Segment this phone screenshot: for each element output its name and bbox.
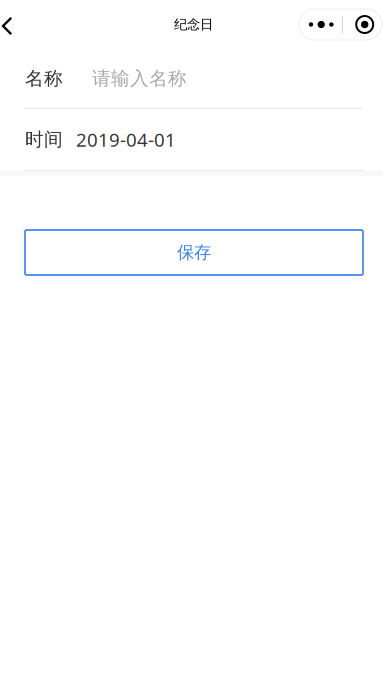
staticText: 保存: [177, 242, 211, 263]
staticText: 2019-04-01: [76, 127, 176, 152]
button[interactable]: 保存: [25, 230, 363, 275]
button[interactable]: More: [299, 9, 382, 40]
staticText: 纪念日: [174, 16, 213, 33]
staticText: 时间: [25, 128, 63, 151]
button[interactable]: Back: [0, 2, 42, 46]
staticText: 请输入名称: [92, 67, 187, 90]
button[interactable]: 名称: [0, 49, 383, 108]
staticText: 名称: [25, 67, 63, 90]
button[interactable]: 时间: [0, 109, 383, 170]
